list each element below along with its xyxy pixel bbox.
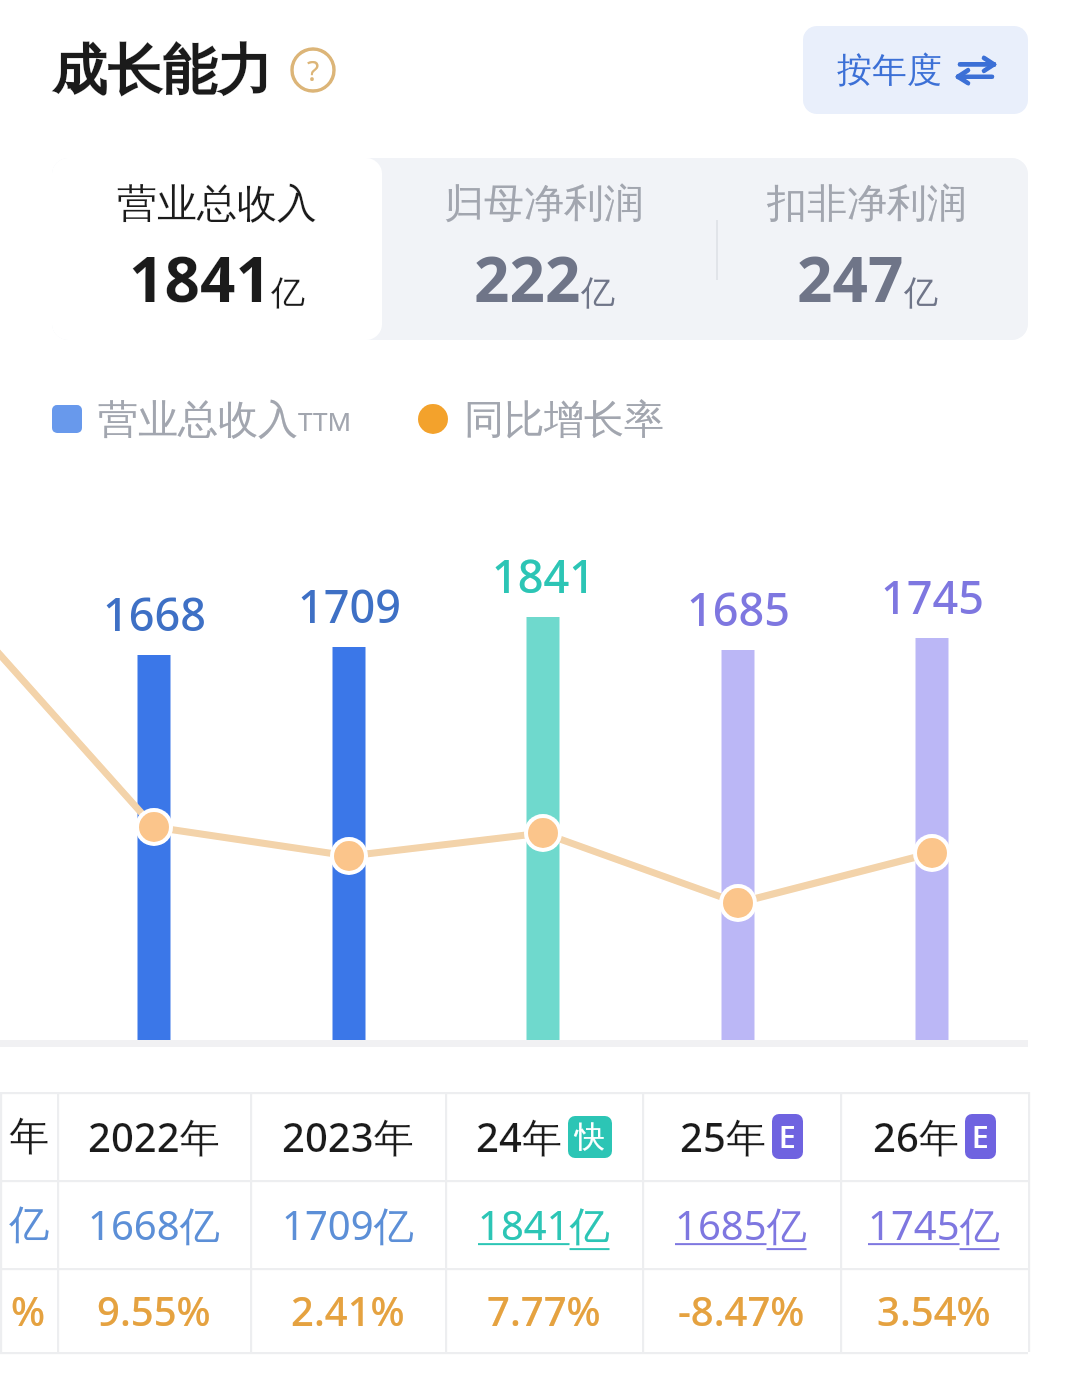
staticText: 1709亿 xyxy=(282,1197,414,1252)
staticText: 24年 xyxy=(476,1109,562,1164)
staticText: 营业总收入 xyxy=(98,394,298,444)
button[interactable]: 2022年 xyxy=(57,1092,250,1180)
staticText: 亿 xyxy=(9,1199,49,1249)
button[interactable]: 1685亿 xyxy=(642,1180,840,1268)
button[interactable]: 2.41% xyxy=(250,1268,445,1352)
staticText: 2022年 xyxy=(88,1109,220,1164)
staticText: 扣非净利润 xyxy=(767,178,967,228)
button[interactable]: 9.55% xyxy=(57,1268,250,1352)
staticText: 1709 xyxy=(298,575,401,636)
button[interactable]: 1841亿 xyxy=(445,1180,642,1268)
staticText: -8.47% xyxy=(678,1283,805,1337)
staticText: 同比增长率 xyxy=(464,394,664,444)
staticText: 3.54% xyxy=(877,1283,991,1337)
staticText: 247 xyxy=(797,236,904,320)
button[interactable]: 1668亿 xyxy=(57,1180,250,1268)
staticText: 26年 xyxy=(873,1109,959,1164)
staticText: 1841 xyxy=(129,236,271,320)
button[interactable]: 按年度 xyxy=(803,26,1028,114)
button[interactable]: 年 xyxy=(0,1092,57,1180)
button[interactable]: 26年 xyxy=(840,1092,1028,1180)
button[interactable]: 亿 xyxy=(0,1180,57,1268)
button[interactable]: 1709亿 xyxy=(250,1180,445,1268)
button[interactable]: 说明 xyxy=(290,47,336,93)
staticText: 归母净利润 xyxy=(444,178,644,228)
staticText: 2.41% xyxy=(291,1283,405,1337)
staticText: 年 xyxy=(9,1111,49,1161)
staticText: 亿 xyxy=(581,271,615,314)
button[interactable]: 2023年 xyxy=(250,1092,445,1180)
staticText: 222 xyxy=(474,236,581,320)
staticText: 亿 xyxy=(271,271,305,314)
button[interactable]: -8.47% xyxy=(642,1268,840,1352)
button[interactable]: 扣非净利润 xyxy=(705,158,1028,340)
staticText: 1745亿 xyxy=(868,1197,1000,1252)
staticText: 营业总收入 xyxy=(117,178,317,228)
staticText: 亿 xyxy=(904,271,938,314)
button[interactable]: 7.77% xyxy=(445,1268,642,1352)
staticText: 1685亿 xyxy=(675,1197,807,1252)
staticText: E xyxy=(779,1116,796,1157)
staticText: 1685 xyxy=(687,578,790,639)
staticText: 9.55% xyxy=(97,1283,211,1337)
staticText: 1841亿 xyxy=(478,1197,610,1252)
staticText: 成长能力 xyxy=(52,36,272,105)
staticText: 1668亿 xyxy=(88,1197,220,1252)
staticText: 2023年 xyxy=(282,1109,414,1164)
button[interactable]: 1745亿 xyxy=(840,1180,1028,1268)
staticText: % xyxy=(11,1283,46,1337)
button[interactable]: 3.54% xyxy=(840,1268,1028,1352)
staticText: 1841 xyxy=(492,545,595,606)
staticText: TTM xyxy=(298,403,352,438)
button[interactable]: 24年 xyxy=(445,1092,642,1180)
button[interactable]: % xyxy=(0,1268,57,1352)
staticText: 按年度 xyxy=(837,48,942,92)
staticText: 快 xyxy=(575,1118,605,1156)
button[interactable]: 归母净利润 xyxy=(382,158,705,340)
button[interactable]: 25年 xyxy=(642,1092,840,1180)
staticText: 7.77% xyxy=(487,1283,601,1337)
staticText: 1745 xyxy=(881,566,984,627)
staticText: ? xyxy=(307,51,320,89)
staticText: E xyxy=(972,1116,989,1157)
staticText: 1668 xyxy=(103,583,206,644)
button[interactable]: 营业总收入 xyxy=(52,158,382,340)
staticText: 25年 xyxy=(680,1109,766,1164)
